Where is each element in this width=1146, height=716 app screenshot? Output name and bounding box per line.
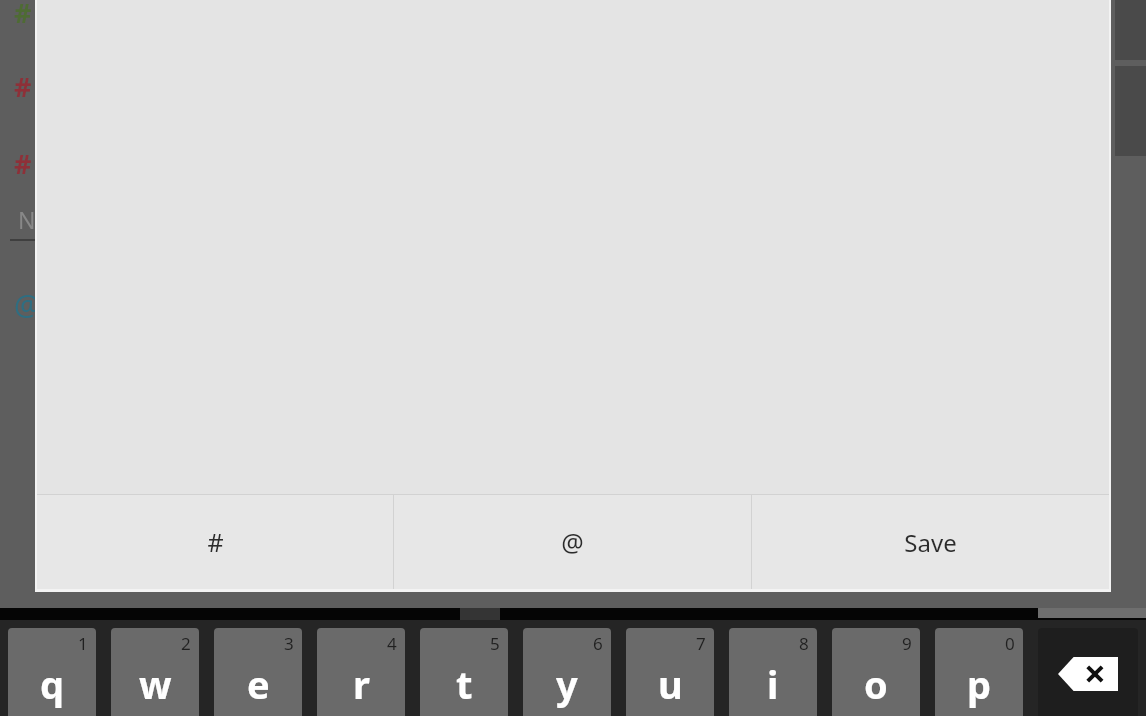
- staticText: q: [40, 658, 65, 710]
- staticText: #: [207, 525, 224, 559]
- staticText: @: [561, 525, 584, 559]
- staticText: N: [18, 204, 36, 235]
- button[interactable]: 1: [8, 628, 96, 716]
- staticText: t: [456, 658, 473, 710]
- staticText: #: [14, 145, 32, 182]
- staticText: 7: [696, 632, 706, 655]
- staticText: r: [353, 658, 370, 710]
- button[interactable]: @: [394, 495, 751, 589]
- button[interactable]: 4: [317, 628, 405, 716]
- staticText: 9: [902, 632, 912, 655]
- staticText: o: [864, 658, 888, 710]
- staticText: e: [247, 658, 270, 710]
- staticText: 2: [181, 632, 191, 655]
- staticText: 5: [490, 632, 500, 655]
- staticText: @: [14, 285, 41, 324]
- button[interactable]: 3: [214, 628, 302, 716]
- button[interactable]: Save: [752, 495, 1109, 589]
- staticText: #: [14, 0, 32, 31]
- staticText: 4: [387, 632, 397, 655]
- staticText: i: [767, 658, 779, 710]
- staticText: Save: [904, 526, 957, 559]
- staticText: 8: [799, 632, 809, 655]
- button[interactable]: 0: [935, 628, 1023, 716]
- button[interactable]: Backspace: [1038, 628, 1138, 716]
- staticText: 6: [593, 632, 603, 655]
- staticText: 1: [78, 632, 88, 655]
- staticText: 0: [1005, 632, 1015, 655]
- button[interactable]: 5: [420, 628, 508, 716]
- staticText: #: [14, 68, 32, 105]
- button[interactable]: 9: [832, 628, 920, 716]
- button[interactable]: 6: [523, 628, 611, 716]
- staticText: 3: [284, 632, 294, 655]
- staticText: p: [967, 658, 992, 710]
- button[interactable]: 7: [626, 628, 714, 716]
- button[interactable]: #: [37, 495, 393, 589]
- button[interactable]: 2: [111, 628, 199, 716]
- button[interactable]: 8: [729, 628, 817, 716]
- staticText: w: [139, 658, 172, 710]
- staticText: y: [556, 658, 578, 710]
- staticText: u: [658, 658, 683, 710]
